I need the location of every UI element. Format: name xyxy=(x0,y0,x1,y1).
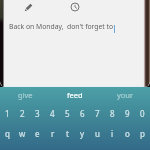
button[interactable]: p xyxy=(135,123,150,143)
button[interactable]: feed xyxy=(50,87,100,103)
staticText: your xyxy=(117,90,134,100)
staticText: 9 xyxy=(125,108,130,119)
staticText: p xyxy=(140,128,145,139)
button[interactable]: q xyxy=(0,123,15,143)
button[interactable]: r xyxy=(45,123,60,143)
staticText: i xyxy=(111,128,114,139)
button[interactable]: y xyxy=(75,123,90,143)
staticText: q xyxy=(5,128,10,139)
staticText: 0 xyxy=(140,108,145,119)
button[interactable]: t xyxy=(60,123,75,143)
button[interactable]: i xyxy=(105,123,120,143)
staticText: 2 xyxy=(20,108,25,119)
staticText: 5 xyxy=(65,108,70,119)
button[interactable]: 6 xyxy=(75,103,90,123)
staticText: 8 xyxy=(110,108,115,119)
staticText: 7 xyxy=(95,108,100,119)
staticText: 1 xyxy=(5,108,10,119)
button[interactable]: Edit xyxy=(21,0,35,14)
button[interactable]: o xyxy=(120,123,135,143)
staticText: feed xyxy=(67,90,83,100)
button[interactable]: e xyxy=(30,123,45,143)
staticText: give xyxy=(18,90,33,100)
button[interactable]: History xyxy=(68,0,82,14)
button[interactable]: w xyxy=(15,123,30,143)
button[interactable]: 9 xyxy=(120,103,135,123)
button[interactable]: 8 xyxy=(105,103,120,123)
staticText: t xyxy=(66,128,69,139)
button[interactable]: 2 xyxy=(15,103,30,123)
staticText: w xyxy=(19,128,26,139)
button[interactable]: 3 xyxy=(30,103,45,123)
staticText: 4 xyxy=(50,108,55,119)
staticText: r xyxy=(51,128,55,139)
staticText: 6 xyxy=(80,108,85,119)
staticText: 3 xyxy=(35,108,40,119)
staticText: e xyxy=(35,128,40,139)
staticText: u xyxy=(95,128,100,139)
button[interactable]: 4 xyxy=(45,103,60,123)
button[interactable]: give xyxy=(0,87,50,103)
button[interactable]: 5 xyxy=(60,103,75,123)
button[interactable]: u xyxy=(90,123,105,143)
button[interactable]: 0 xyxy=(135,103,150,123)
button[interactable]: your xyxy=(100,87,150,103)
button[interactable]: 1 xyxy=(0,103,15,123)
staticText: o xyxy=(125,128,130,139)
button[interactable]: 7 xyxy=(90,103,105,123)
staticText: y xyxy=(80,128,85,139)
staticText: Back on Monday, don't forget to xyxy=(9,22,114,31)
